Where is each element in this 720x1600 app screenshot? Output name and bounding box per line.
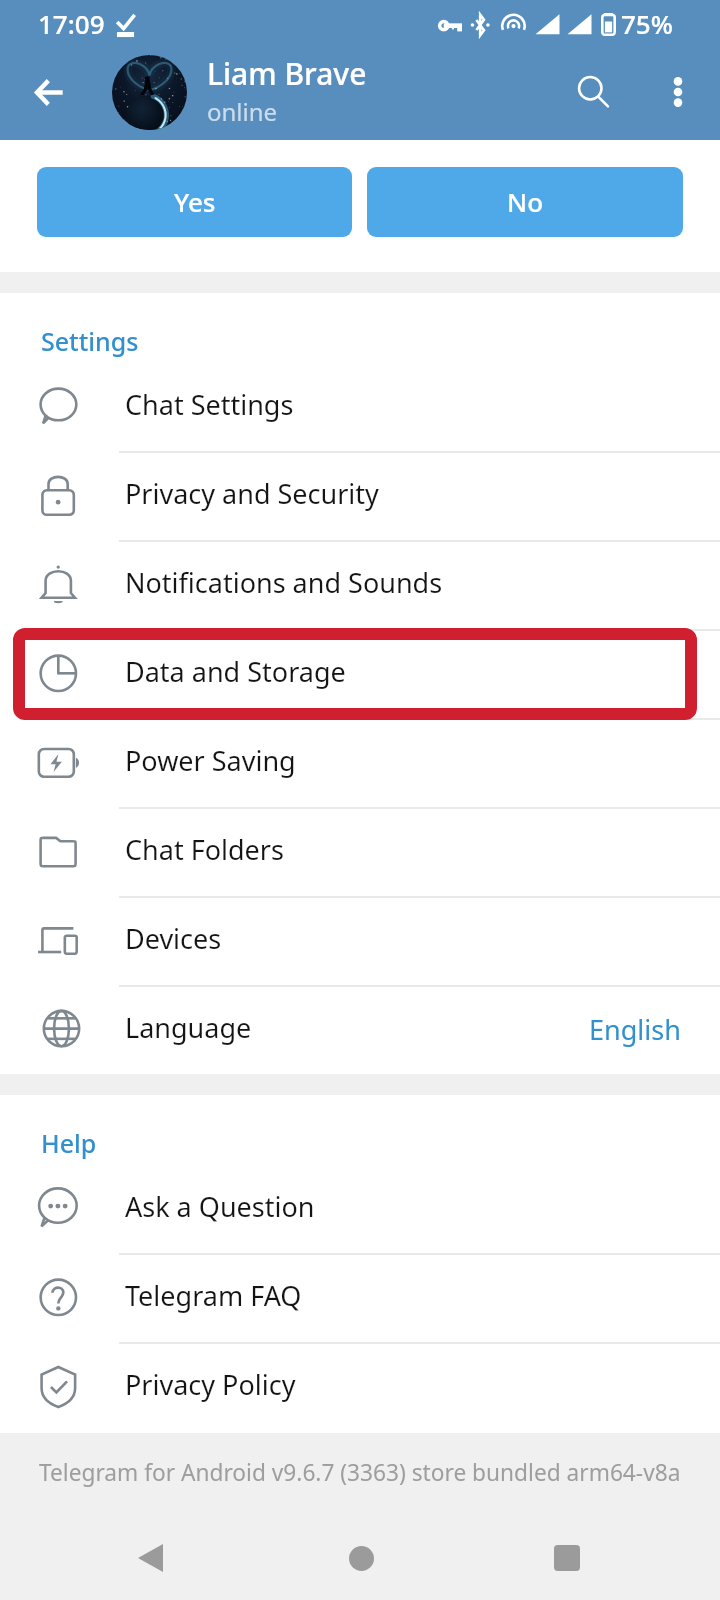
button[interactable]: Power Saving: [0, 718, 720, 807]
button[interactable]: Data and Storage: [0, 629, 720, 718]
staticText: Telegram for Android v9.6.7 (3363) store…: [39, 1457, 681, 1488]
staticText: Liam Brave: [207, 53, 367, 94]
button[interactable]: Back: [21, 64, 77, 120]
button[interactable]: Language: [0, 985, 720, 1074]
button[interactable]: Privacy and Security: [0, 451, 720, 540]
button[interactable]: Ask a Question: [0, 1164, 720, 1253]
staticText: 17:09: [38, 6, 105, 41]
button[interactable]: Notifications and Sounds: [0, 540, 720, 629]
staticText: Telegram FAQ: [125, 1277, 302, 1314]
staticText: No: [507, 184, 544, 219]
staticText: English: [589, 1011, 681, 1048]
staticText: Settings: [41, 324, 139, 358]
button[interactable]: Chat Folders: [0, 807, 720, 896]
button[interactable]: Devices: [0, 896, 720, 985]
button[interactable]: More options: [650, 64, 706, 120]
staticText: Ask a Question: [125, 1188, 315, 1225]
staticText: Devices: [125, 920, 222, 957]
staticText: Data and Storage: [125, 653, 346, 690]
staticText: Power Saving: [125, 742, 296, 779]
button[interactable]: Home: [316, 1513, 406, 1600]
staticText: Help: [41, 1126, 97, 1160]
staticText: Privacy and Security: [125, 475, 379, 512]
staticText: Language: [125, 1009, 252, 1046]
staticText: Notifications and Sounds: [125, 564, 443, 601]
button[interactable]: Chat Settings: [0, 362, 720, 451]
button[interactable]: Search: [565, 63, 621, 119]
button[interactable]: Telegram FAQ: [0, 1253, 720, 1342]
button[interactable]: No: [367, 167, 683, 237]
staticText: Yes: [174, 184, 216, 219]
staticText: Chat Folders: [125, 831, 284, 868]
staticText: Chat Settings: [125, 386, 294, 423]
button[interactable]: Yes: [37, 167, 352, 237]
button[interactable]: Privacy Policy: [0, 1342, 720, 1431]
staticText: online: [207, 95, 278, 128]
button[interactable]: Back: [105, 1513, 195, 1600]
staticText: 75%: [621, 6, 673, 41]
button[interactable]: Recent apps: [522, 1513, 612, 1600]
staticText: Privacy Policy: [125, 1366, 296, 1403]
